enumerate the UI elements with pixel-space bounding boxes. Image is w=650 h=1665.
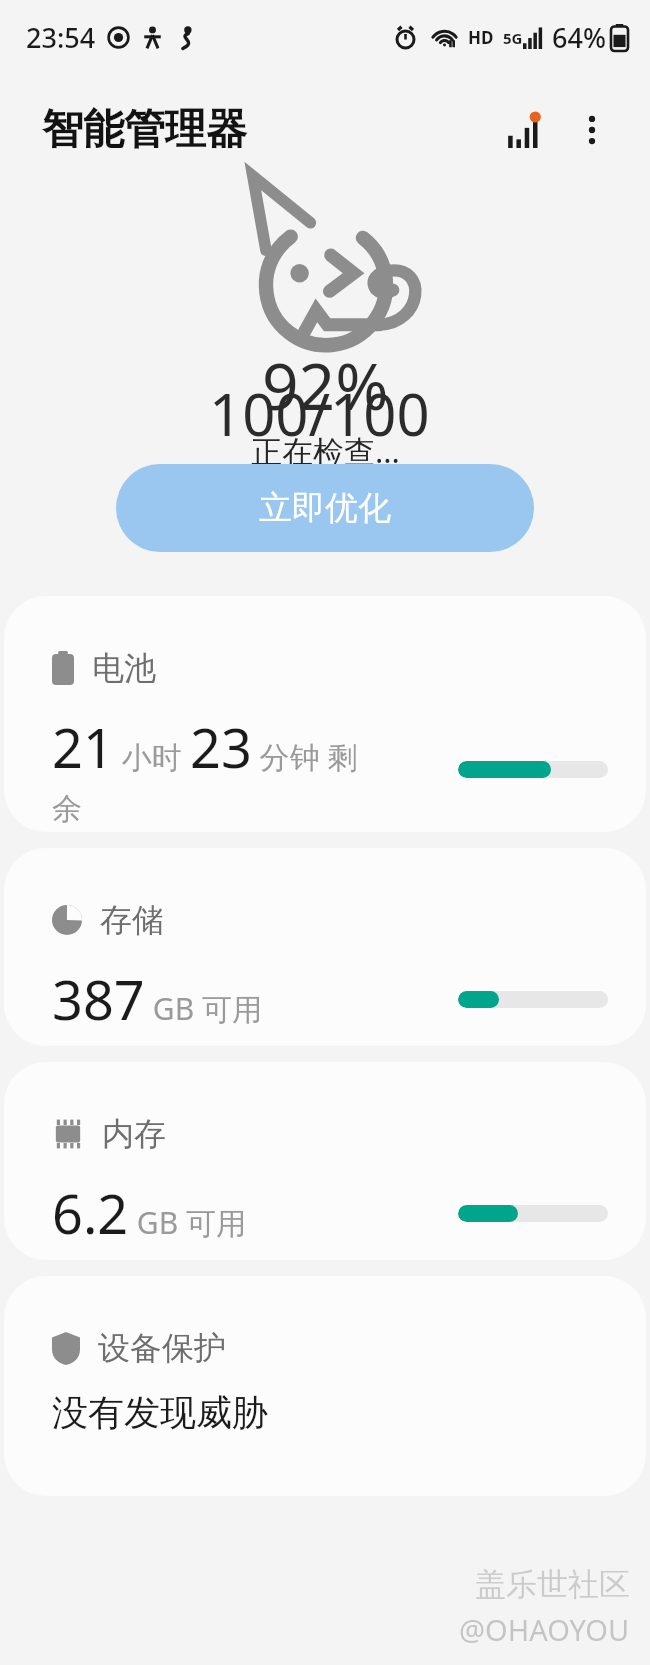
staticText: HD	[468, 26, 494, 49]
staticText: 64%	[552, 19, 606, 56]
staticText: 小时	[114, 736, 190, 777]
staticText: 内存	[102, 1114, 166, 1154]
staticText: 立即优化	[259, 487, 391, 529]
button[interactable]: 存储	[4, 848, 646, 1046]
button[interactable]: 设备保护	[4, 1276, 646, 1496]
button[interactable]: 内存	[4, 1062, 646, 1260]
staticText: GB 可用	[129, 1202, 246, 1243]
button[interactable]: More options	[560, 98, 624, 162]
staticText: 100/100	[209, 374, 430, 453]
staticText: 6.2	[52, 1176, 129, 1250]
staticText: GB 可用	[145, 988, 262, 1029]
staticText: 电池	[92, 648, 156, 688]
button[interactable]: Usage statistics	[492, 98, 556, 162]
staticText: 盖乐世社区	[475, 1565, 630, 1604]
staticText: 387	[52, 962, 145, 1036]
staticText: 5G	[503, 28, 523, 48]
staticText: 智能管理器	[42, 104, 247, 156]
staticText: 没有发现威胁	[52, 1390, 268, 1435]
staticText: 23	[190, 710, 252, 784]
staticText: @OHAOYOU	[459, 1610, 630, 1649]
staticText: 分钟 剩	[252, 736, 358, 777]
staticText: 设备保护	[98, 1328, 226, 1368]
staticText: 存储	[100, 900, 164, 940]
button[interactable]: 立即优化	[116, 464, 534, 552]
staticText: 92%	[262, 342, 389, 429]
staticText: 正在检查...	[251, 430, 400, 472]
staticText: 23:54	[26, 19, 96, 56]
button[interactable]: 电池	[4, 596, 646, 832]
staticText: 余	[52, 790, 82, 828]
staticText: 21	[52, 710, 114, 784]
